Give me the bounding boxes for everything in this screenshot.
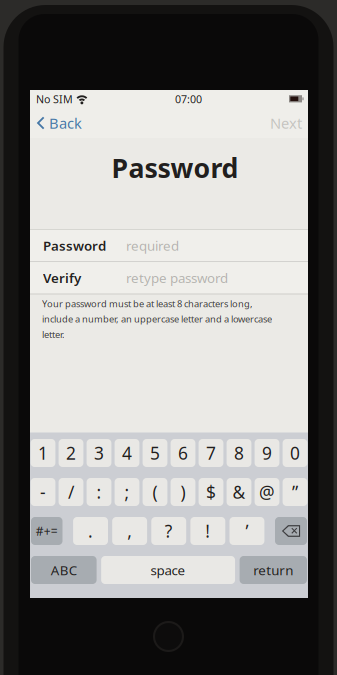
staticText: return [253,561,293,579]
button[interactable]: space [101,556,235,584]
staticText: ? [165,519,173,542]
staticText: ( [152,480,157,503]
button[interactable]: : [87,478,111,506]
button[interactable]: ( [143,478,167,506]
button[interactable]: ! [190,517,225,545]
staticText: ’ [245,519,248,542]
button[interactable]: ABC [31,556,97,584]
button[interactable]: ” [283,478,307,506]
button[interactable]: Verify [30,262,308,294]
button[interactable]: 6 [171,439,195,467]
staticText: Your password must be at least 8 charact… [42,297,253,310]
staticText: include a number, an uppercase letter an… [42,313,272,325]
button[interactable]: 3 [87,439,111,467]
button[interactable]: #+= [31,517,62,545]
button[interactable]: / [59,478,83,506]
staticText: Next [270,113,302,133]
staticText: 0 [290,441,300,464]
staticText: retype password [126,269,228,287]
button[interactable]: ’ [229,517,264,545]
button[interactable]: & [227,478,251,506]
button[interactable]: return [240,556,307,584]
button[interactable]: Next [262,108,308,138]
button[interactable]: 9 [255,439,279,467]
button[interactable]: 0 [283,439,307,467]
button[interactable]: @ [255,478,279,506]
staticText: ” [292,480,298,503]
staticText: ) [180,480,185,503]
button[interactable]: - [31,478,55,506]
button[interactable]: 4 [115,439,139,467]
staticText: @ [259,480,275,503]
staticText: 7 [206,441,216,464]
staticText: Back [49,113,82,133]
staticText: 3 [94,441,104,464]
staticText: : [96,480,101,503]
staticText: 2 [66,441,76,464]
staticText: Verify [43,269,81,287]
staticText: 5 [150,441,160,464]
button[interactable]: 8 [227,439,251,467]
staticText: / [68,480,74,503]
button[interactable]: $ [199,478,223,506]
staticText: 4 [122,441,132,464]
staticText: $ [206,480,216,503]
button[interactable]: Back [30,108,90,138]
staticText: ABC [51,561,77,579]
staticText: 6 [178,441,188,464]
staticText: Password [111,150,238,185]
staticText: space [151,561,186,579]
staticText: ; [124,480,129,503]
staticText: required [126,237,179,254]
staticText: No SIM [36,92,73,106]
button[interactable]: . [73,517,108,545]
button[interactable]: ; [115,478,139,506]
staticText: #+= [36,523,58,539]
button[interactable]: Delete [275,517,307,545]
staticText: Password [43,237,106,254]
button[interactable]: 1 [31,439,55,467]
staticText: , [127,519,132,542]
button[interactable]: ? [151,517,186,545]
staticText: & [232,480,245,503]
button[interactable]: , [112,517,147,545]
staticText: 1 [38,441,48,464]
button[interactable]: 7 [199,439,223,467]
staticText: 07:00 [175,92,202,106]
button[interactable]: ) [171,478,195,506]
staticText: 8 [234,441,244,464]
button[interactable]: 5 [143,439,167,467]
staticText: - [40,480,46,503]
button[interactable]: 2 [59,439,83,467]
button[interactable]: Password [30,230,308,261]
staticText: letter. [42,328,65,341]
staticText: 9 [262,441,272,464]
staticText: . [88,519,93,542]
staticText: ! [205,519,210,542]
